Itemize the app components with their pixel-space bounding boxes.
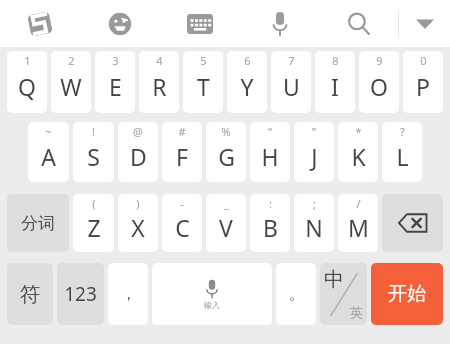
button[interactable]: 7 (271, 51, 311, 113)
staticText: 开始 (388, 282, 426, 306)
staticText: Y (240, 71, 254, 102)
button[interactable]: 123 (57, 263, 104, 325)
staticText: 输入 (204, 300, 220, 310)
staticText: A (41, 141, 56, 172)
staticText: E (109, 71, 122, 102)
staticText: % (221, 124, 231, 139)
button[interactable]: Voice input (240, 0, 320, 47)
staticText: 0 (420, 53, 427, 68)
staticText: Z (87, 212, 101, 243)
staticText: L (396, 141, 409, 172)
button[interactable]: 。 (276, 263, 316, 325)
button[interactable]: % (206, 122, 246, 182)
staticText: M (348, 212, 369, 243)
staticText: ? (400, 124, 405, 139)
staticText: ( (92, 196, 96, 211)
button[interactable]: “ (250, 122, 290, 182)
button[interactable]: 1 (7, 51, 47, 113)
button[interactable]: Space, voice input (152, 263, 272, 325)
staticText: _ (224, 196, 229, 211)
staticText: * (355, 124, 362, 139)
staticText: 4 (156, 53, 163, 68)
button[interactable]: # (162, 122, 202, 182)
staticText: # (178, 124, 186, 139)
staticText: S (87, 141, 100, 172)
button[interactable]: ) (118, 194, 158, 252)
button[interactable]: 2 (51, 51, 91, 113)
staticText: K (351, 141, 366, 172)
staticText: V (219, 212, 233, 243)
button[interactable]: 0 (403, 51, 443, 113)
button[interactable]: 开始 (371, 263, 443, 325)
button[interactable]: _ (206, 194, 246, 252)
button[interactable]: 6 (227, 51, 267, 113)
button[interactable]: 分词 (7, 194, 69, 252)
staticText: C (175, 212, 190, 243)
staticText: 。 (289, 285, 304, 304)
staticText: 分词 (21, 213, 55, 234)
staticText: H (261, 141, 279, 172)
staticText: W (60, 71, 82, 102)
button[interactable]: More (399, 0, 450, 47)
button[interactable]: 8 (315, 51, 355, 113)
button[interactable]: Chinese English toggle (320, 263, 367, 325)
staticText: ) (136, 196, 140, 211)
staticText: J (311, 141, 318, 172)
staticText: 123 (64, 281, 97, 307)
staticText: ; (313, 196, 316, 211)
button[interactable]: ” (294, 122, 334, 182)
staticText: G (218, 141, 235, 172)
button[interactable]: Keyboard layout (160, 0, 240, 47)
staticText: ， (121, 285, 136, 304)
staticText: ~ (45, 124, 52, 139)
button[interactable]: Backspace (382, 194, 443, 252)
button[interactable]: / (338, 194, 378, 252)
staticText: B (263, 212, 278, 243)
button[interactable]: ; (294, 194, 334, 252)
staticText: 8 (332, 53, 339, 68)
staticText: 英 (350, 304, 363, 320)
staticText: 符 (20, 282, 40, 307)
staticText: 中 (324, 267, 344, 292)
staticText: U (283, 71, 300, 102)
staticText: O (370, 71, 388, 102)
staticText: T (197, 71, 210, 102)
staticText: / (356, 196, 361, 211)
staticText: F (176, 141, 188, 172)
staticText: ” (312, 124, 316, 139)
staticText: ! (92, 124, 95, 139)
button[interactable]: : (250, 194, 290, 252)
staticText: 9 (376, 53, 383, 68)
staticText: 2 (68, 53, 75, 68)
staticText: R (152, 71, 167, 102)
staticText: 7 (288, 53, 295, 68)
staticText: I (331, 71, 339, 102)
staticText: - (180, 196, 184, 211)
button[interactable]: * (338, 122, 378, 182)
button[interactable]: 9 (359, 51, 399, 113)
button[interactable]: ! (73, 122, 114, 182)
staticText: “ (268, 124, 272, 139)
staticText: : (269, 196, 272, 211)
button[interactable]: ( (73, 194, 114, 252)
staticText: X (131, 212, 145, 243)
staticText: P (416, 71, 430, 102)
button[interactable]: 3 (95, 51, 135, 113)
button[interactable]: Sogou input (0, 0, 80, 47)
staticText: D (130, 141, 147, 172)
staticText: @ (133, 124, 143, 139)
button[interactable]: ? (382, 122, 422, 182)
button[interactable]: 符 (7, 263, 53, 325)
button[interactable]: Emoji (80, 0, 160, 47)
button[interactable]: @ (118, 122, 158, 182)
button[interactable]: 5 (183, 51, 223, 113)
button[interactable]: ~ (28, 122, 69, 182)
staticText: 5 (200, 53, 207, 68)
button[interactable]: Search (320, 0, 398, 47)
button[interactable]: - (162, 194, 202, 252)
button[interactable]: 4 (139, 51, 179, 113)
staticText: 6 (244, 53, 251, 68)
button[interactable]: ， (108, 263, 148, 325)
staticText: 3 (112, 53, 119, 68)
staticText: N (305, 212, 323, 243)
